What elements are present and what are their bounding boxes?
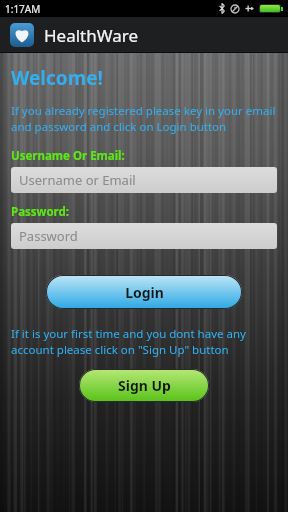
button[interactable]: Username or Email <box>11 167 277 193</box>
staticText: Username Or Email: <box>11 148 125 164</box>
staticText: Sign Up <box>118 376 171 395</box>
button[interactable]: Login <box>46 275 242 309</box>
staticText: 1:17AM <box>5 2 41 16</box>
staticText: HealthWare <box>44 24 139 47</box>
staticText: If you already registered please key in … <box>11 103 277 134</box>
other: HealthWare logo <box>12 25 32 45</box>
staticText: Username or Email <box>19 171 136 189</box>
button[interactable]: Password <box>11 223 277 249</box>
staticText: Password <box>19 227 78 245</box>
button[interactable]: Sign Up <box>79 369 209 402</box>
staticText: Password: <box>11 204 70 220</box>
staticText: Login <box>125 283 164 302</box>
staticText: Welcome! <box>11 65 103 91</box>
staticText: If it is your first time and you dont ha… <box>11 326 277 357</box>
